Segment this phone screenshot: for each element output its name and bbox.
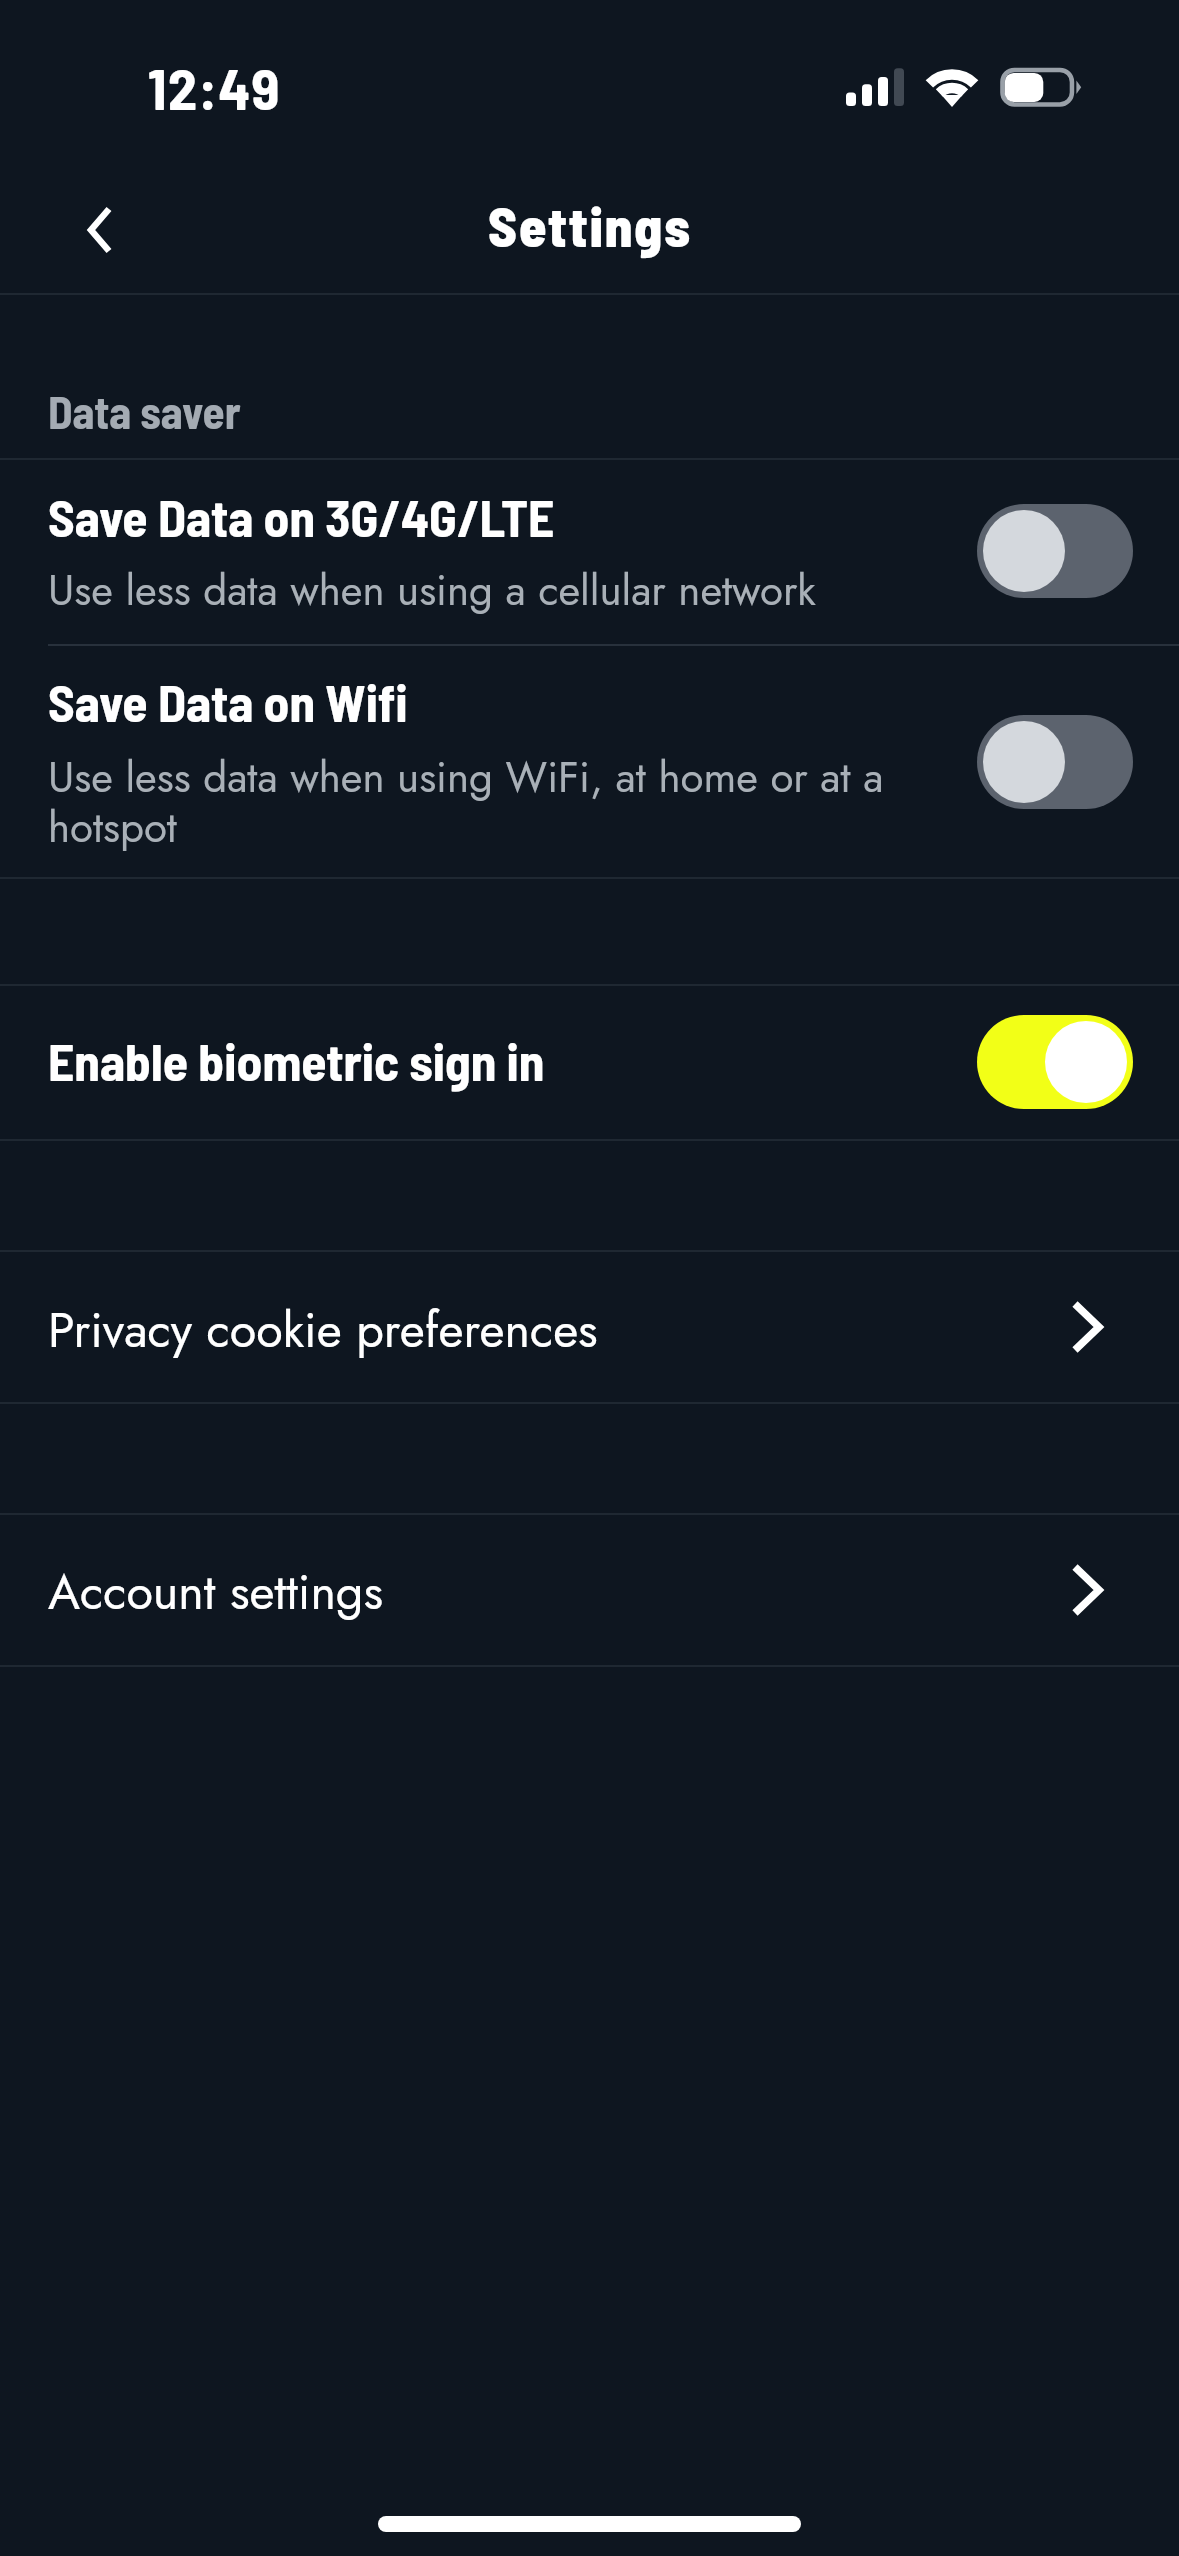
button[interactable] <box>0 1252 1179 1402</box>
staticText: Account settings <box>48 1557 384 1627</box>
staticText: Use less data when using a cellular netw… <box>48 560 816 621</box>
button[interactable]: Toggle on <box>977 1015 1133 1109</box>
button[interactable] <box>0 986 1179 1139</box>
staticText: Save Data on 3G/4G/LTE <box>48 485 555 547</box>
staticText: Settings <box>488 192 692 258</box>
staticText: 12:49 <box>148 52 282 122</box>
button[interactable] <box>0 646 1179 877</box>
button[interactable] <box>0 1515 1179 1665</box>
staticText: Use less data when using WiFi, at home o… <box>48 747 884 858</box>
staticText: Data saver <box>48 384 241 438</box>
button[interactable]: Back <box>40 170 160 290</box>
button[interactable]: Toggle off <box>977 504 1133 598</box>
staticText: Enable biometric sign in <box>48 1029 545 1091</box>
button[interactable]: Toggle off <box>977 715 1133 809</box>
staticText: Privacy cookie preferences <box>48 1295 598 1365</box>
staticText: Save Data on Wifi <box>48 670 408 732</box>
button[interactable] <box>0 460 1179 644</box>
